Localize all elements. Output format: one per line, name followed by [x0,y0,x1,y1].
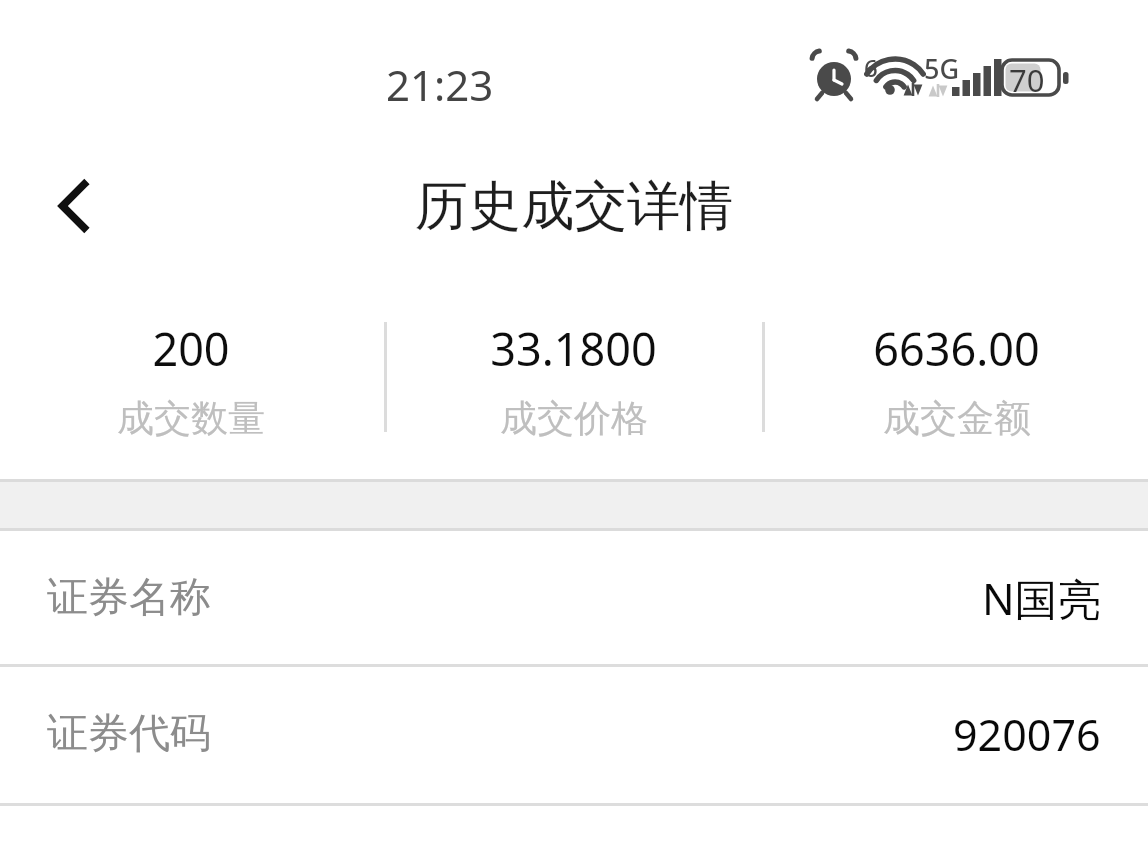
staticText: 成交金额 [883,395,1031,442]
button[interactable]: Back [28,150,126,262]
staticText: 证券名称 [47,572,211,624]
staticText: 70 [1009,59,1045,101]
button[interactable]: 证券名称 [0,531,1148,665]
staticText: 920076 [953,705,1101,764]
staticText: 6636.00 [873,318,1040,379]
staticText: 5G [924,50,960,87]
staticText: 6 [864,51,878,84]
staticText: N国亮 [982,569,1101,628]
staticText: 成交价格 [500,395,648,442]
staticText: 证券代码 [47,708,211,760]
button[interactable]: 6636.00 [765,300,1148,442]
button[interactable]: 33.1800 [382,300,765,442]
button[interactable]: 200 [0,300,382,442]
staticText: 21:23 [386,56,494,113]
staticText: 历史成交详情 [415,173,733,240]
button[interactable]: 证券代码 [0,667,1148,801]
staticText: 33.1800 [490,318,657,379]
staticText: 200 [152,318,230,379]
staticText: 成交数量 [117,395,265,442]
